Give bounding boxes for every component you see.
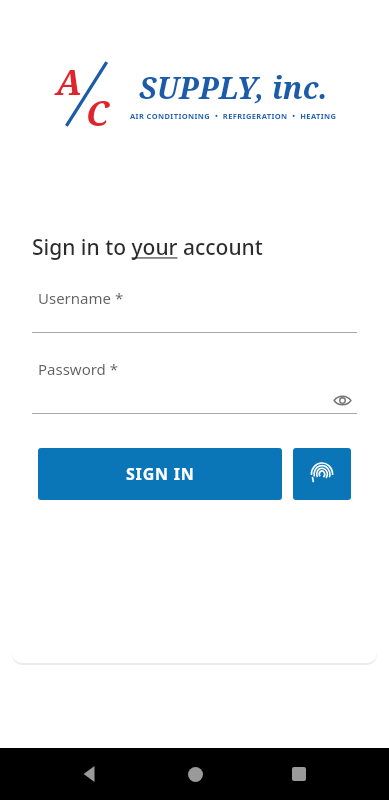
staticText: Password * <box>38 359 119 379</box>
staticText: Sign in to your account <box>32 233 263 262</box>
staticText: SIGN IN <box>126 463 195 485</box>
button[interactable]: Password * <box>32 359 357 414</box>
button[interactable]: SIGN IN <box>38 448 282 500</box>
staticText: Username * <box>38 288 124 308</box>
staticText: AIR CONDITIONING • REFRIGERATION • HEATI… <box>130 111 337 121</box>
staticText: A <box>56 59 82 105</box>
staticText: C <box>86 90 109 136</box>
button[interactable]: Show password <box>327 385 357 415</box>
button[interactable]: Back <box>70 754 110 794</box>
staticText: SUPPLY, inc. <box>139 67 328 108</box>
button[interactable]: Recent apps <box>279 754 319 794</box>
button[interactable]: Home <box>175 754 215 794</box>
button[interactable]: Username * <box>32 288 357 333</box>
button[interactable]: Sign in with fingerprint <box>293 448 351 500</box>
